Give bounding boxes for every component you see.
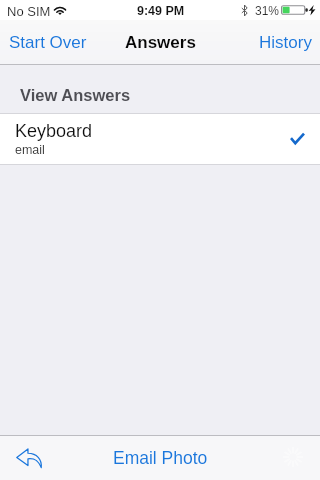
button[interactable]: Email Photo: [97, 441, 224, 475]
button[interactable]: History: [250, 27, 320, 58]
staticText: Start Over: [9, 33, 87, 52]
staticText: email: [15, 143, 45, 157]
button[interactable]: Start Over: [0, 27, 96, 58]
staticText: 9:49 PM: [137, 4, 185, 18]
button[interactable]: Reply: [8, 440, 50, 476]
staticText: Keyboard: [15, 121, 93, 141]
button[interactable]: Keyboard: [0, 114, 320, 164]
staticText: Answers: [125, 33, 196, 52]
staticText: No SIM: [7, 4, 51, 19]
staticText: View Answers: [20, 86, 131, 104]
staticText: 31%: [255, 4, 280, 17]
staticText: History: [259, 33, 312, 52]
staticText: Email Photo: [113, 448, 208, 468]
